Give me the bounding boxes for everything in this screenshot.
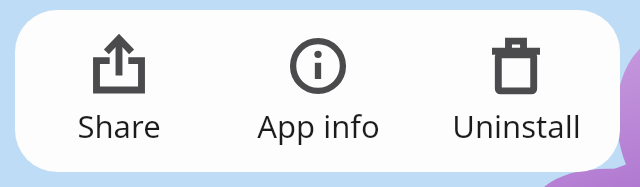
other: Uninstall — [486, 36, 546, 96]
button[interactable]: Uninstall — [421, 36, 611, 147]
other: App info — [288, 36, 348, 96]
button[interactable]: App info — [223, 36, 413, 147]
staticText: Uninstall — [452, 105, 581, 147]
staticText: Share — [77, 105, 161, 147]
staticText: App info — [257, 105, 380, 147]
button[interactable]: Share — [24, 36, 214, 147]
other: Share — [89, 36, 149, 96]
